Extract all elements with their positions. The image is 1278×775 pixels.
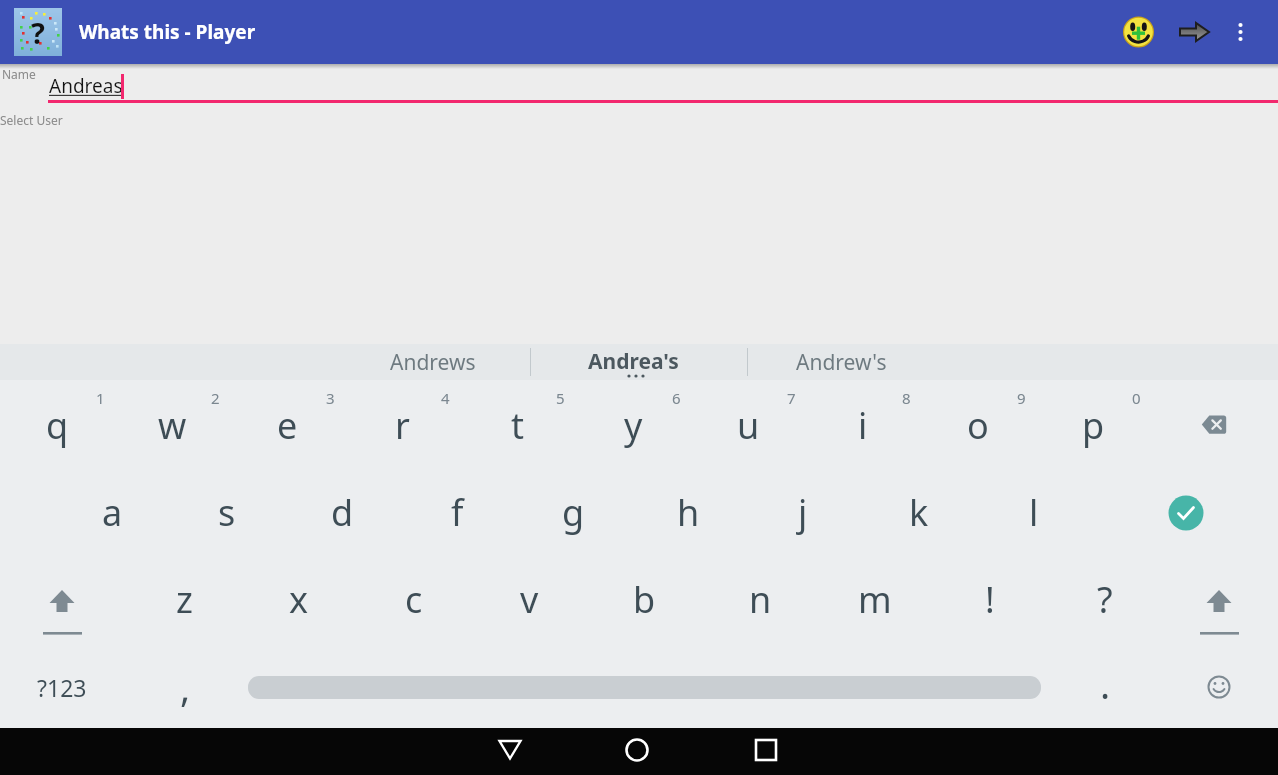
button[interactable] bbox=[1165, 560, 1273, 644]
staticText: o bbox=[967, 401, 989, 450]
staticText: ?123 bbox=[37, 672, 87, 703]
button[interactable]: x bbox=[245, 559, 353, 639]
button[interactable]: Andrews bbox=[343, 344, 523, 380]
button[interactable]: ? bbox=[1051, 559, 1159, 639]
button[interactable] bbox=[1160, 387, 1268, 467]
button[interactable]: p bbox=[1039, 385, 1147, 465]
button[interactable]: Andrea's bbox=[543, 343, 723, 379]
button[interactable]: o bbox=[924, 385, 1032, 465]
staticText: 4 bbox=[441, 388, 450, 408]
button[interactable] bbox=[1132, 473, 1240, 553]
button[interactable] bbox=[1165, 647, 1273, 727]
staticText: Name bbox=[2, 66, 36, 82]
staticText: t bbox=[511, 401, 524, 450]
staticText: , bbox=[180, 661, 191, 713]
button[interactable]: e bbox=[233, 385, 341, 465]
staticText: Andrea's bbox=[588, 347, 679, 376]
staticText: w bbox=[158, 401, 187, 450]
button[interactable]: ? bbox=[14, 8, 62, 56]
button[interactable]: b bbox=[590, 559, 698, 639]
button[interactable]: m bbox=[821, 559, 929, 639]
button[interactable]: y bbox=[579, 385, 687, 465]
staticText: k bbox=[909, 488, 929, 537]
button[interactable] bbox=[478, 728, 542, 775]
staticText: 7 bbox=[787, 388, 796, 408]
staticText: ! bbox=[985, 575, 995, 624]
button[interactable]: k bbox=[865, 472, 973, 552]
staticText: ? bbox=[1097, 575, 1113, 624]
staticText: d bbox=[331, 488, 354, 537]
staticText: i bbox=[858, 401, 868, 450]
button[interactable]: w bbox=[118, 385, 226, 465]
button[interactable]: d bbox=[288, 472, 396, 552]
staticText: n bbox=[749, 575, 772, 624]
staticText: 3 bbox=[326, 388, 335, 408]
button[interactable]: f bbox=[403, 472, 511, 552]
staticText: . bbox=[1100, 658, 1111, 710]
staticText: q bbox=[46, 401, 69, 450]
staticText: b bbox=[633, 575, 656, 624]
staticText: h bbox=[677, 488, 700, 537]
button[interactable]: h bbox=[634, 472, 742, 552]
staticText: 2 bbox=[211, 388, 220, 408]
button[interactable]: t bbox=[463, 385, 571, 465]
button[interactable]: ?123 bbox=[8, 647, 116, 727]
staticText: f bbox=[451, 488, 464, 537]
staticText: l bbox=[1029, 488, 1039, 537]
button[interactable]: Andreas bbox=[49, 72, 1278, 100]
button[interactable]: . bbox=[1051, 644, 1159, 724]
staticText: s bbox=[218, 488, 236, 537]
button[interactable]: r bbox=[348, 385, 456, 465]
button[interactable]: i bbox=[809, 385, 917, 465]
staticText: c bbox=[405, 575, 423, 624]
staticText: Andrew's bbox=[796, 348, 887, 377]
button[interactable]: ! bbox=[936, 559, 1044, 639]
staticText: 6 bbox=[672, 388, 681, 408]
button[interactable] bbox=[605, 728, 669, 775]
staticText: 8 bbox=[902, 388, 911, 408]
staticText: x bbox=[289, 575, 309, 624]
button[interactable]: s bbox=[173, 472, 281, 552]
button[interactable]: , bbox=[131, 647, 239, 727]
staticText: v bbox=[520, 575, 539, 624]
staticText: p bbox=[1082, 401, 1105, 450]
staticText: a bbox=[102, 488, 123, 537]
staticText: 5 bbox=[556, 388, 565, 408]
staticText: j bbox=[798, 488, 808, 537]
button[interactable]: a bbox=[58, 472, 166, 552]
staticText: ? bbox=[31, 13, 45, 52]
staticText: Select User bbox=[0, 112, 63, 128]
staticText: m bbox=[858, 575, 892, 624]
button[interactable] bbox=[1117, 11, 1159, 53]
button[interactable]: j bbox=[749, 472, 857, 552]
button[interactable]: Andrew's bbox=[751, 344, 931, 380]
staticText: 0 bbox=[1132, 388, 1141, 408]
button[interactable]: c bbox=[360, 559, 468, 639]
staticText: 1 bbox=[96, 388, 105, 408]
button[interactable]: u bbox=[694, 385, 802, 465]
staticText: u bbox=[737, 401, 760, 450]
staticText: Whats this - Player bbox=[79, 19, 256, 45]
button[interactable]: q bbox=[3, 385, 111, 465]
staticText: e bbox=[277, 401, 298, 450]
button[interactable]: v bbox=[475, 559, 583, 639]
button[interactable] bbox=[734, 728, 798, 775]
staticText: r bbox=[395, 401, 410, 450]
staticText: Andrews bbox=[390, 348, 476, 377]
button[interactable]: n bbox=[706, 559, 814, 639]
button[interactable] bbox=[1174, 12, 1216, 52]
staticText: 9 bbox=[1017, 388, 1026, 408]
button[interactable]: g bbox=[519, 472, 627, 552]
button[interactable] bbox=[8, 560, 116, 644]
staticText: g bbox=[562, 488, 585, 537]
staticText: Andreas bbox=[49, 73, 123, 99]
button[interactable]: z bbox=[130, 559, 238, 639]
staticText: z bbox=[176, 575, 193, 624]
button[interactable]: l bbox=[980, 472, 1088, 552]
staticText: y bbox=[624, 401, 643, 450]
button[interactable] bbox=[1226, 12, 1256, 52]
